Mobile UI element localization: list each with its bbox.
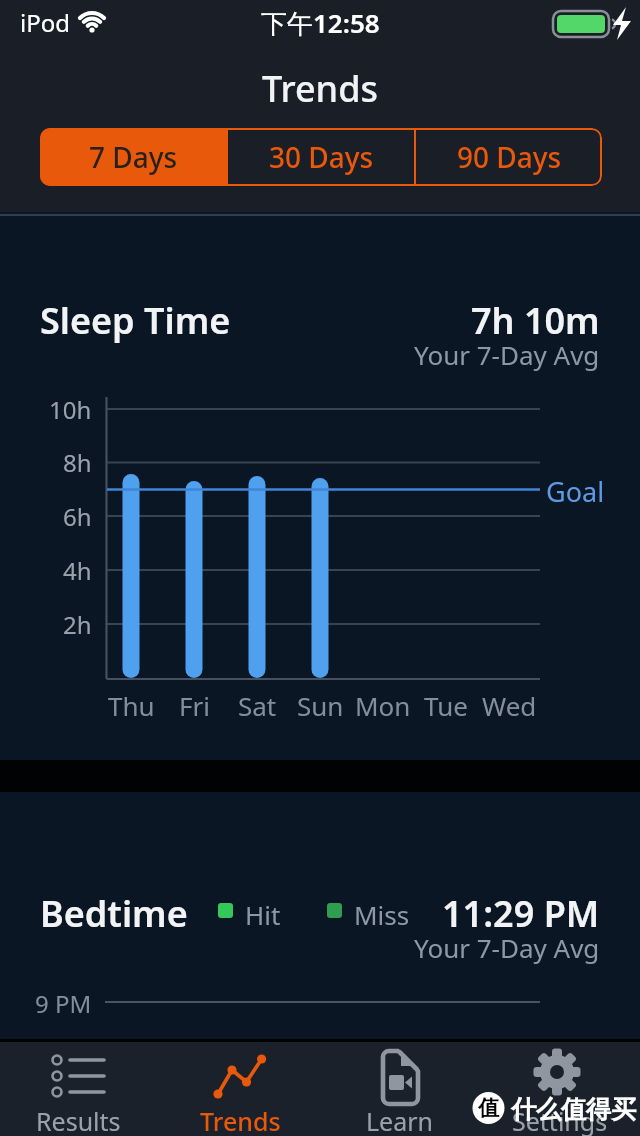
staticText: Fri [179,688,210,723]
staticText: Mon [355,688,411,723]
staticText: 什么值得买 [511,1094,636,1125]
staticText: 8h [63,446,92,479]
staticText: 7h 10m [471,296,600,345]
staticText: 11:29 PM [442,889,600,938]
staticText: Trends [262,64,378,113]
staticText: Goal [546,473,605,510]
staticText: 值 [478,1095,499,1121]
staticText: Hit [245,897,281,932]
staticText: iPod [20,6,70,39]
staticText: Wed [482,688,537,723]
staticText: 4h [63,554,92,587]
button[interactable] [320,1042,480,1136]
staticText: 9 PM [35,987,92,1020]
button[interactable]: 7 Days [40,128,226,186]
staticText: Results [36,1104,121,1136]
staticText: 2h [63,608,92,641]
staticText: Sleep Time [40,296,231,345]
staticText: Miss [354,897,410,932]
button[interactable] [0,1042,160,1136]
staticText: 7 Days [89,138,178,176]
staticText: 10h [49,393,92,426]
button[interactable] [160,1042,320,1136]
staticText: 30 Days [269,138,374,176]
staticText: Trends [200,1104,281,1136]
staticText: Settings [512,1104,608,1136]
staticText: Bedtime [40,889,188,938]
staticText: Your 7-Day Avg [414,337,600,372]
staticText: 90 Days [457,138,562,176]
staticText: Thu [108,688,155,723]
button[interactable]: 90 Days [416,128,602,186]
staticText: Sun [297,688,344,723]
staticText: Tue [424,688,468,723]
staticText: 6h [63,500,92,533]
button[interactable] [480,1042,640,1136]
staticText: Your 7-Day Avg [414,930,600,965]
staticText: 下午12:58 [261,5,380,41]
staticText: Sat [238,688,277,723]
staticText: Learn [366,1104,434,1136]
button[interactable]: 30 Days [228,128,414,186]
